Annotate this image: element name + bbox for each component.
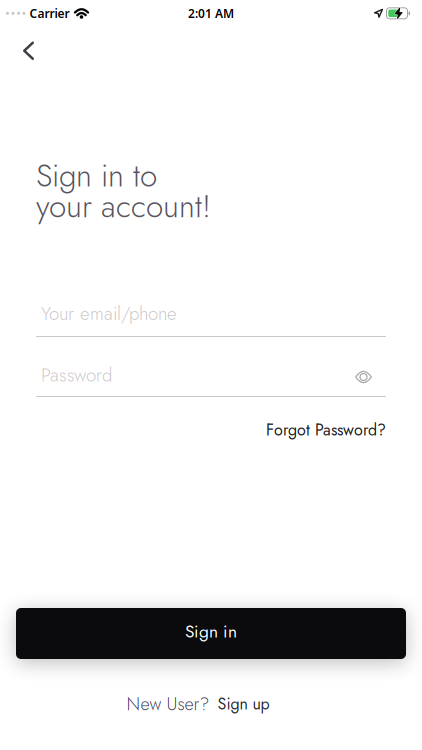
staticText: Password xyxy=(41,361,112,388)
staticText: Sign in to your account! xyxy=(36,153,211,229)
staticText: Forgot Password? xyxy=(266,418,386,442)
staticText: Carrier xyxy=(29,5,69,21)
staticText: New User? xyxy=(126,691,209,717)
staticText: Sign up xyxy=(217,692,269,715)
button[interactable]: Forgot Password? xyxy=(266,418,386,442)
staticText: Your email/phone xyxy=(41,300,177,327)
button[interactable]: Sign in xyxy=(16,608,406,659)
button[interactable]: Show password xyxy=(355,370,386,388)
button[interactable]: Back xyxy=(0,22,34,60)
staticText: 2:01 AM xyxy=(188,5,234,21)
staticText: Sign in xyxy=(185,619,237,644)
button[interactable]: Sign up xyxy=(217,692,269,715)
